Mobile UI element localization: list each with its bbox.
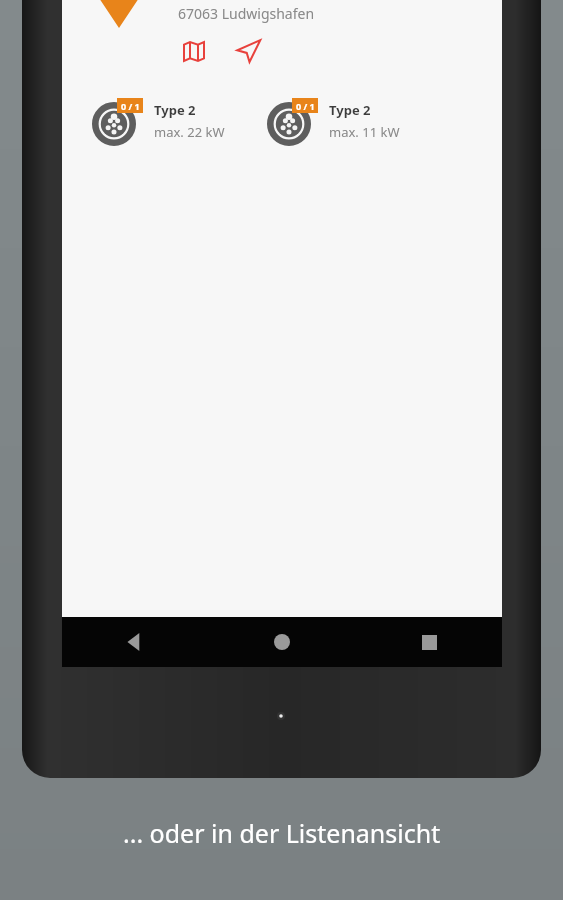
staticText: 67063 Ludwigshafen bbox=[178, 4, 315, 23]
button[interactable]: Navigate bbox=[226, 33, 270, 69]
staticText: Type 2 bbox=[329, 101, 371, 119]
staticText: max. 11 kW bbox=[329, 123, 400, 141]
button[interactable]: Type 2 connector, 0 of 1 available bbox=[90, 95, 148, 147]
button[interactable]: Back bbox=[62, 617, 208, 667]
button[interactable]: Show on map bbox=[172, 33, 216, 69]
staticText: 0 / 1 bbox=[121, 100, 140, 112]
button[interactable]: Recent apps bbox=[356, 617, 502, 667]
button[interactable]: Type 2 connector, 0 of 1 available bbox=[265, 95, 323, 147]
staticText: 0 / 1 bbox=[296, 100, 315, 112]
staticText: ... oder in der Listenansicht bbox=[123, 816, 441, 850]
staticText: max. 22 kW bbox=[154, 123, 225, 141]
staticText: Type 2 bbox=[154, 101, 196, 119]
button[interactable]: Home bbox=[208, 617, 356, 667]
